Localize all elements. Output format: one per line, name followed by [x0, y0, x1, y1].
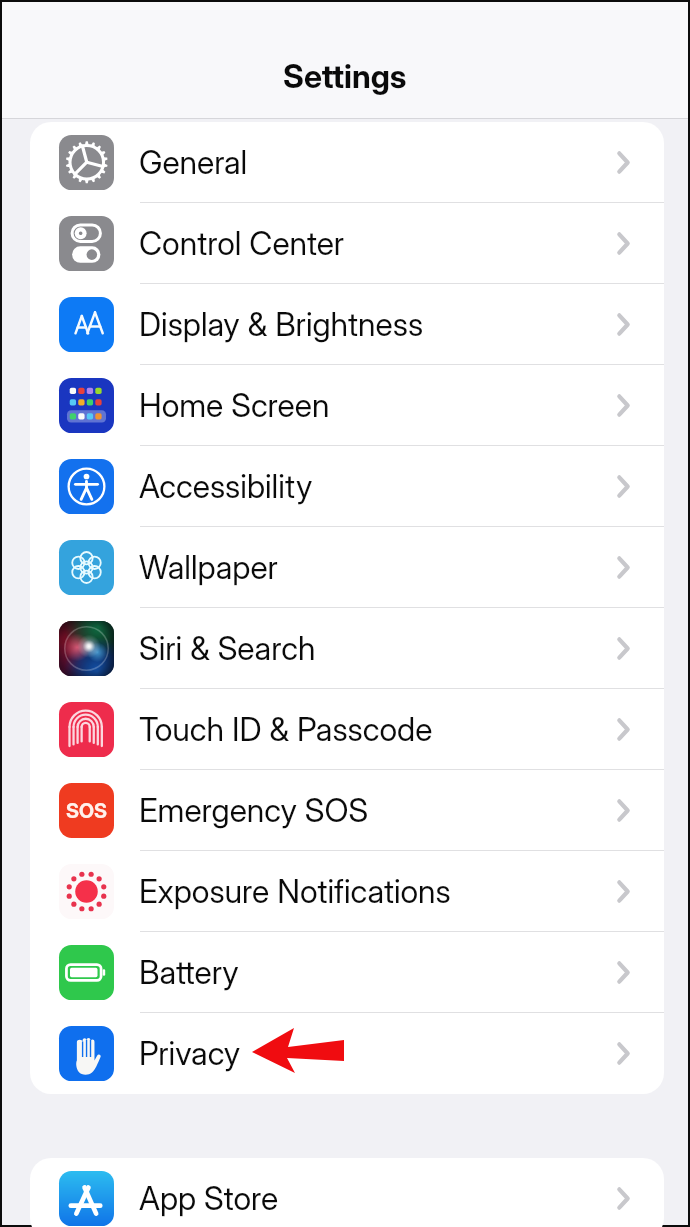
- button[interactable]: Touch ID & Passcode: [30, 689, 664, 770]
- staticText: Exposure Notifications: [139, 872, 451, 911]
- staticText: General: [139, 143, 248, 182]
- button[interactable]: Control Center: [30, 203, 664, 284]
- staticText: Wallpaper: [139, 548, 278, 587]
- button[interactable]: Display & Brightness: [30, 284, 664, 365]
- button[interactable]: Home Screen: [30, 365, 664, 446]
- button[interactable]: Siri & Search: [30, 608, 664, 689]
- button[interactable]: General: [30, 122, 664, 203]
- staticText: Emergency SOS: [139, 791, 369, 830]
- staticText: Settings: [283, 57, 407, 96]
- button[interactable]: Privacy: [30, 1013, 664, 1094]
- button[interactable]: Exposure Notifications: [30, 851, 664, 932]
- staticText: Siri & Search: [139, 629, 316, 668]
- staticText: App Store: [139, 1179, 279, 1218]
- button[interactable]: App Store: [30, 1158, 664, 1227]
- staticText: Privacy: [139, 1034, 241, 1073]
- button[interactable]: Accessibility: [30, 446, 664, 527]
- staticText: Home Screen: [139, 386, 330, 425]
- button[interactable]: SOS: [30, 770, 664, 851]
- staticText: Accessibility: [139, 467, 313, 506]
- button[interactable]: Wallpaper: [30, 527, 664, 608]
- staticText: Touch ID & Passcode: [139, 710, 433, 749]
- staticText: SOS: [66, 799, 108, 823]
- staticText: Display & Brightness: [139, 305, 424, 344]
- button[interactable]: Battery: [30, 932, 664, 1013]
- staticText: Control Center: [139, 224, 345, 263]
- staticText: Battery: [139, 953, 239, 992]
